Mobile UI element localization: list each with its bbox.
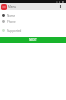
- staticText: Phone: [7, 20, 16, 24]
- button[interactable]: Open account: [1, 4, 7, 10]
- staticText: NEXT: [29, 38, 37, 42]
- button[interactable]: NEXT: [0, 37, 66, 43]
- staticText: Supported: [7, 29, 22, 33]
- button[interactable]: Supported: [0, 28, 66, 33]
- staticText: Menu: [8, 5, 17, 9]
- staticText: Name: [7, 14, 16, 18]
- button[interactable]: Phone: [0, 19, 66, 24]
- button[interactable]: Name: [0, 13, 66, 18]
- button[interactable]: More options: [58, 4, 63, 9]
